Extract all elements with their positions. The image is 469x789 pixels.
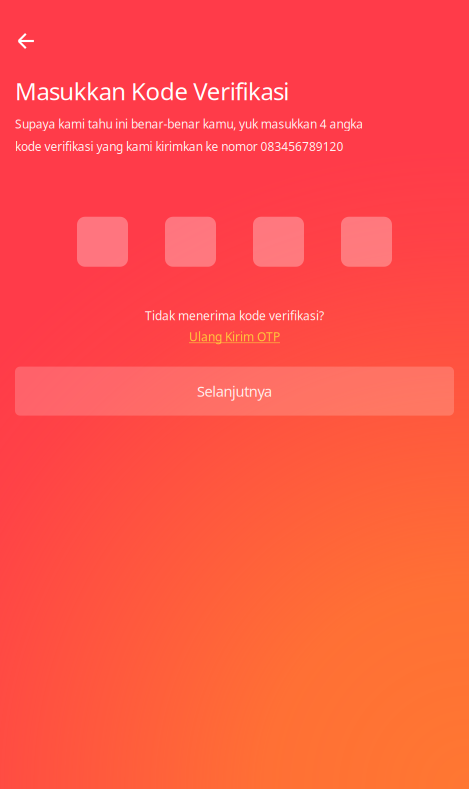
button[interactable]: Back (4, 24, 48, 58)
button[interactable]: Ulang Kirim OTP (189, 329, 280, 345)
staticText: Supaya kami tahu ini benar-benar kamu, y… (15, 116, 363, 132)
button[interactable]: Selanjutnya (15, 367, 454, 416)
staticText: Ulang Kirim OTP (189, 329, 280, 345)
staticText: Selanjutnya (197, 381, 272, 401)
staticText: Tidak menerima kode verifikasi? (145, 308, 324, 324)
staticText: kode verifikasi yang kami kirimkan ke no… (15, 138, 343, 154)
staticText: Masukkan Kode Verifikasi (15, 75, 289, 107)
